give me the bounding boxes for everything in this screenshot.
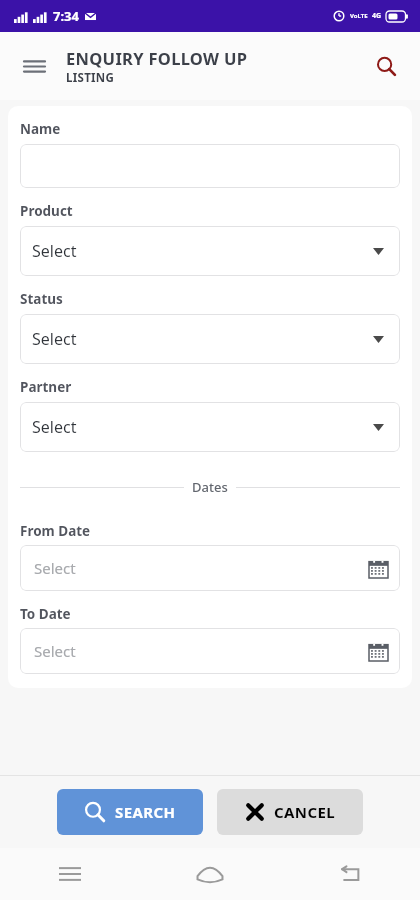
button[interactable]: CANCEL <box>217 789 363 835</box>
staticText: Name <box>20 120 61 138</box>
button[interactable] <box>20 144 400 188</box>
staticText: Select <box>34 558 76 578</box>
staticText: Status <box>20 290 63 308</box>
staticText: VoLTE <box>350 12 368 20</box>
staticText: Select <box>32 416 77 438</box>
staticText: Partner <box>20 378 72 396</box>
staticText: Select <box>32 328 77 350</box>
button[interactable]: Select <box>20 545 400 591</box>
staticText: ENQUIRY FOLLOW UP <box>66 47 248 69</box>
staticText: Dates <box>192 478 228 496</box>
button[interactable]: Search <box>366 46 406 86</box>
button[interactable]: Open navigation menu <box>14 46 54 86</box>
button[interactable]: Select <box>20 314 400 364</box>
staticText: Product <box>20 202 73 220</box>
staticText: To Date <box>20 605 71 623</box>
staticText: 7:34 <box>53 7 79 25</box>
button[interactable]: Recent apps <box>46 850 94 898</box>
button[interactable]: Select <box>20 226 400 276</box>
button[interactable]: Select <box>20 628 400 674</box>
staticText: 4G <box>372 11 382 21</box>
button[interactable]: Select <box>20 402 400 452</box>
staticText: LISTING <box>66 70 115 86</box>
staticText: From Date <box>20 522 91 540</box>
button[interactable]: Home <box>186 850 234 898</box>
staticText: SEARCH <box>115 802 176 822</box>
button[interactable]: Back <box>326 850 374 898</box>
staticText: CANCEL <box>274 802 336 822</box>
button[interactable]: SEARCH <box>57 789 203 835</box>
staticText: Select <box>34 641 76 661</box>
staticText: Select <box>32 240 77 262</box>
